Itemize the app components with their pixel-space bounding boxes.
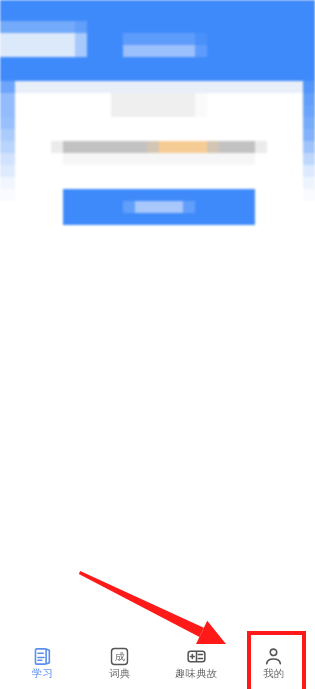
staticText: 学习	[32, 667, 53, 680]
button[interactable]: 趣味典故	[161, 640, 231, 689]
staticText: 词典	[109, 667, 130, 680]
button[interactable]: 学习	[7, 640, 77, 689]
staticText: 我的	[263, 667, 284, 680]
staticText: 成	[115, 650, 125, 663]
button[interactable]: 词典	[84, 640, 154, 689]
staticText: 趣味典故	[175, 667, 217, 680]
button[interactable]: 我的	[238, 640, 308, 689]
